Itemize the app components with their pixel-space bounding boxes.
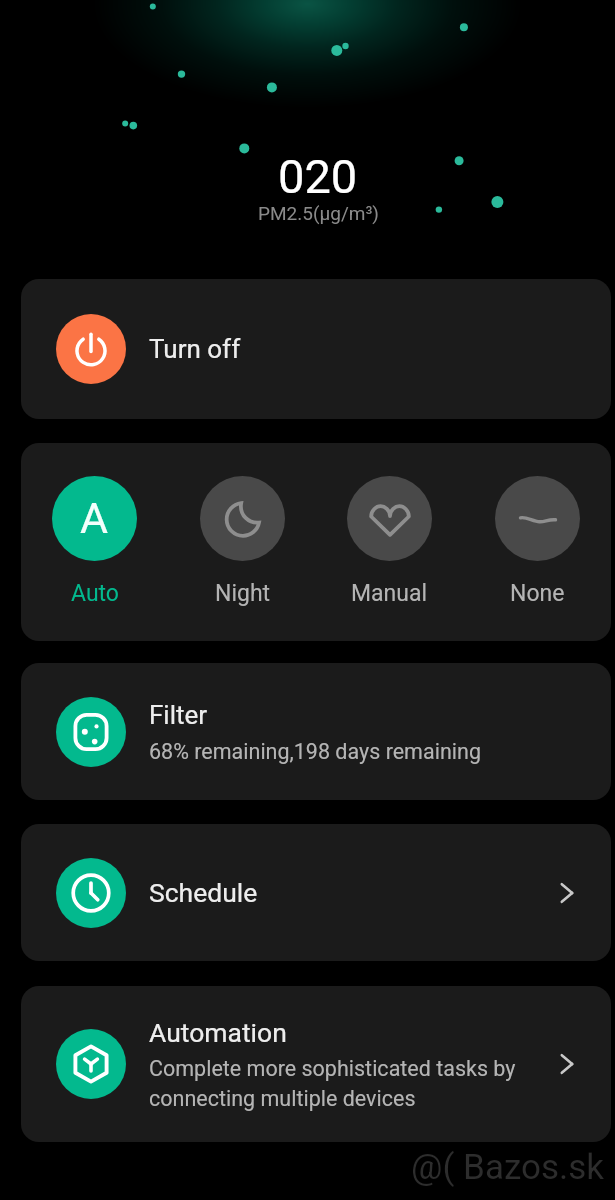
button[interactable]: Automation [21,986,611,1142]
staticText: @( Bazos.sk [411,1147,605,1188]
staticText: Auto [71,580,119,607]
other: Open automation [556,1053,578,1075]
button[interactable]: Night [200,476,285,607]
button[interactable]: Manual [347,476,432,607]
staticText: Manual [351,580,428,607]
button[interactable]: Turn off [21,279,611,419]
button[interactable]: Filter [21,663,611,800]
staticText: PM2.5(µg/m³) [258,202,379,224]
staticText: Complete more sophisticated tasks by con… [149,1056,516,1111]
staticText: Automation [149,1017,287,1048]
staticText: Night [215,580,271,607]
button[interactable]: A [21,443,611,641]
button[interactable]: Schedule [21,824,611,961]
staticText: 68% remaining,198 days remaining [149,739,481,764]
staticText: A [80,493,109,543]
other: Open schedule [556,882,578,904]
staticText: None [510,580,565,607]
staticText: 020 [278,149,358,204]
button[interactable]: None [495,476,580,607]
staticText: Filter [149,700,208,730]
staticText: Turn off [149,334,241,364]
staticText: Schedule [149,877,556,908]
button[interactable]: A [52,476,137,607]
